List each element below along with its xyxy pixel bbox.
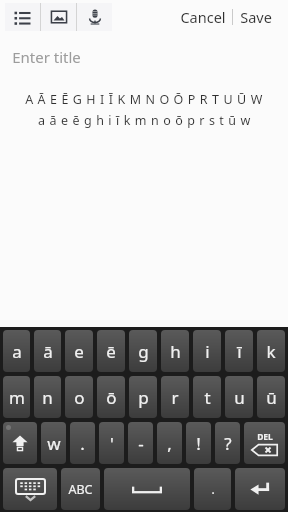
- button[interactable]: Delete: [244, 422, 285, 464]
- staticText: i: [205, 340, 210, 363]
- button[interactable]: Cancel: [174, 2, 232, 32]
- button[interactable]: h: [161, 330, 189, 372]
- staticText: g: [138, 340, 149, 363]
- staticText: A Ā E Ē G H I Ī K M N O Ō P R T U Ū W: [25, 91, 263, 108]
- staticText: w: [47, 432, 61, 455]
- staticText: Cancel: [180, 7, 226, 27]
- button[interactable]: Save: [233, 2, 279, 32]
- staticText: ,: [167, 432, 172, 455]
- staticText: e: [74, 340, 84, 363]
- staticText: m: [9, 386, 25, 409]
- staticText: o: [74, 386, 85, 409]
- button[interactable]: Voice input: [77, 3, 112, 31]
- button[interactable]: ': [99, 422, 124, 464]
- button[interactable]: List: [5, 3, 40, 31]
- staticText: .: [80, 432, 85, 455]
- staticText: a: [12, 340, 22, 363]
- staticText: !: [196, 432, 201, 455]
- button[interactable]: ū: [257, 376, 285, 418]
- button[interactable]: ?: [215, 422, 240, 464]
- staticText: .: [211, 481, 215, 497]
- button[interactable]: Shift caps lock: [3, 422, 37, 464]
- staticText: ABC: [68, 481, 93, 498]
- button[interactable]: m: [3, 376, 30, 418]
- staticText: h: [170, 340, 181, 363]
- button[interactable]: .: [70, 422, 95, 464]
- button[interactable]: Enter: [235, 468, 285, 510]
- staticText: Enter title: [12, 47, 81, 67]
- button[interactable]: e: [65, 330, 93, 372]
- button[interactable]: r: [161, 376, 189, 418]
- staticText: p: [138, 386, 149, 409]
- staticText: ū: [266, 386, 277, 409]
- staticText: a ā e ē g h i ī k m n o ō p r s t ū w: [38, 112, 251, 129]
- button[interactable]: ō: [97, 376, 125, 418]
- staticText: ā: [43, 340, 53, 363]
- staticText: ?: [224, 432, 232, 455]
- staticText: ē: [106, 340, 116, 363]
- button[interactable]: .: [194, 468, 231, 510]
- button[interactable]: p: [129, 376, 157, 418]
- button[interactable]: ABC: [61, 468, 100, 510]
- button[interactable]: i: [193, 330, 221, 372]
- button[interactable]: ,: [157, 422, 182, 464]
- button[interactable]: Insert image: [41, 3, 76, 31]
- staticText: n: [42, 386, 53, 409]
- button[interactable]: Hide keyboard: [3, 468, 57, 510]
- staticText: DEL: [257, 431, 273, 443]
- staticText: -: [138, 432, 144, 455]
- button[interactable]: w: [41, 422, 66, 464]
- staticText: Save: [240, 7, 272, 27]
- staticText: r: [171, 386, 179, 409]
- button[interactable]: Enter title: [0, 34, 288, 67]
- staticText: ': [110, 432, 114, 455]
- button[interactable]: k: [257, 330, 285, 372]
- button[interactable]: Space: [104, 468, 190, 510]
- staticText: k: [266, 340, 276, 363]
- button[interactable]: g: [129, 330, 157, 372]
- button[interactable]: o: [65, 376, 93, 418]
- button[interactable]: A Ā E Ē G H I Ī K M N O Ō P R T U Ū W: [0, 91, 288, 129]
- button[interactable]: !: [186, 422, 211, 464]
- button[interactable]: u: [225, 376, 253, 418]
- staticText: u: [234, 386, 245, 409]
- button[interactable]: ī: [225, 330, 253, 372]
- button[interactable]: ā: [34, 330, 61, 372]
- staticText: ō: [106, 386, 117, 409]
- staticText: ī: [237, 340, 242, 363]
- staticText: t: [204, 386, 211, 409]
- button[interactable]: n: [34, 376, 61, 418]
- button[interactable]: t: [193, 376, 221, 418]
- button[interactable]: -: [128, 422, 153, 464]
- button[interactable]: a: [3, 330, 30, 372]
- button[interactable]: ē: [97, 330, 125, 372]
